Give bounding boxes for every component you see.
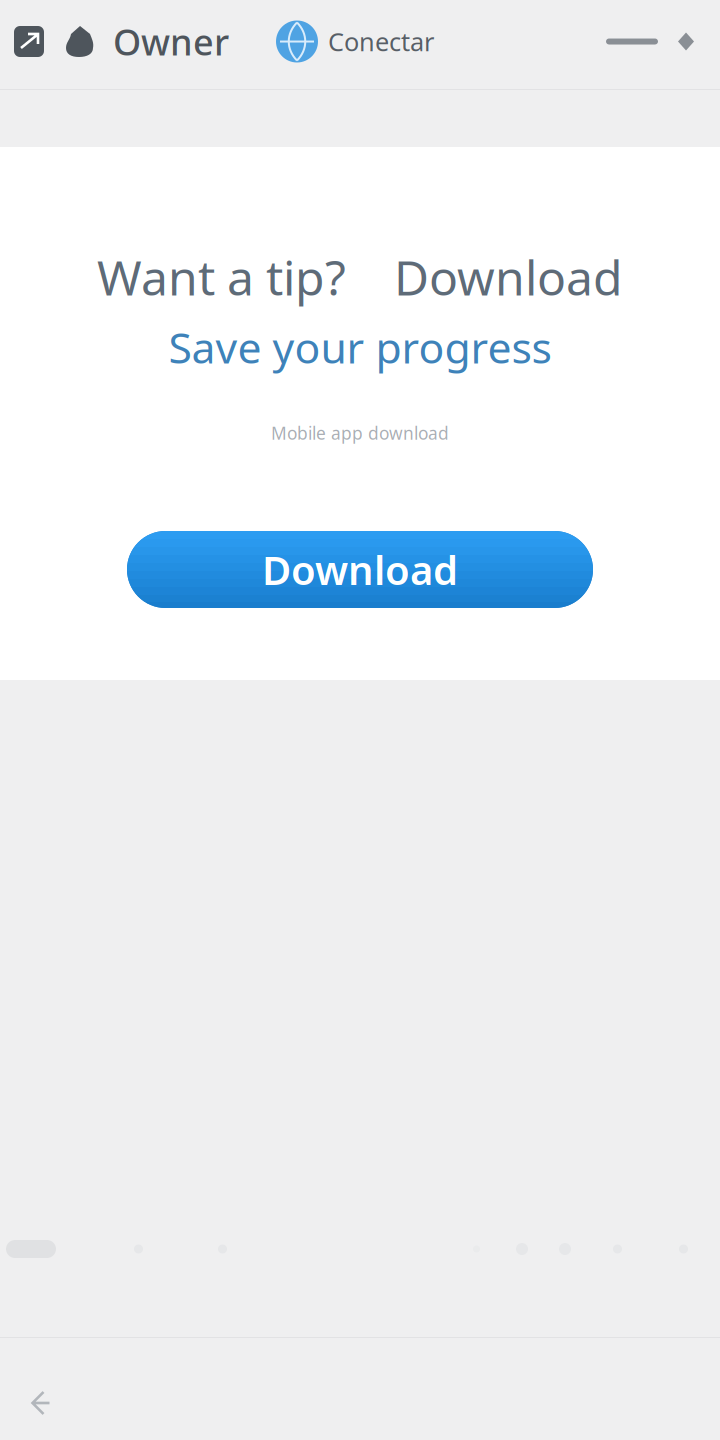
button[interactable]: More options [606, 32, 720, 50]
button[interactable]: Open in app [0, 25, 95, 58]
button[interactable]: Back [12, 1346, 70, 1432]
button[interactable]: Conectar [276, 20, 434, 62]
staticText: Owner [113, 18, 229, 65]
staticText: Mobile app download [271, 421, 449, 444]
staticText: Download [262, 543, 458, 596]
staticText: Conectar [328, 25, 434, 58]
staticText: Want a tip? Download [97, 245, 623, 309]
staticText: Save your progress [168, 319, 551, 375]
button[interactable]: Download [127, 531, 593, 608]
button[interactable]: Owner [95, 18, 229, 65]
